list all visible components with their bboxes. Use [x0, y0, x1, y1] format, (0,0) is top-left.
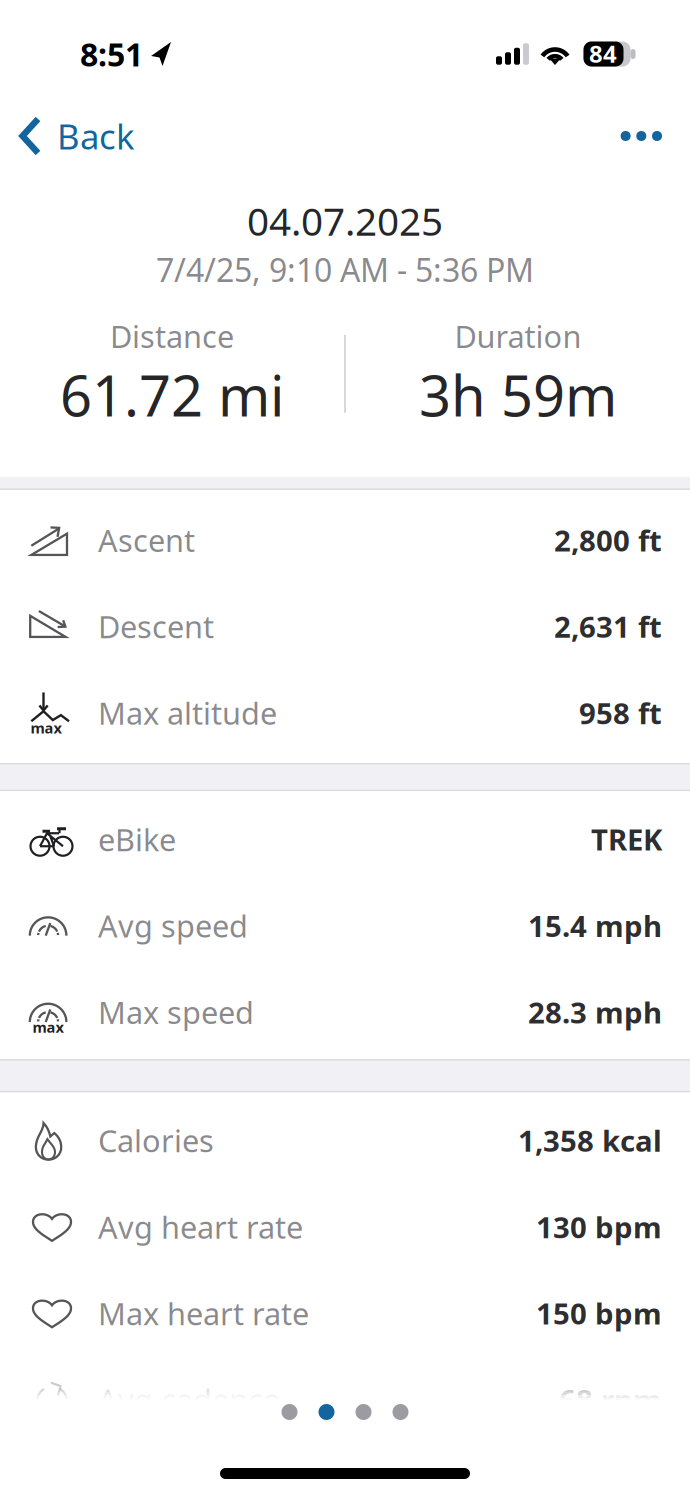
button[interactable]: Calories — [0, 1097, 690, 1184]
staticText: eBike — [98, 819, 176, 860]
staticText: Ascent — [98, 520, 195, 560]
staticText: 1,358 kcal — [518, 1121, 662, 1160]
button[interactable]: Descent — [0, 583, 690, 670]
button[interactable]: Avg speed — [0, 882, 690, 969]
staticText: Max altitude — [98, 692, 277, 733]
button[interactable]: Max heart rate — [0, 1270, 690, 1356]
staticText: 130 bpm — [536, 1207, 662, 1246]
staticText: 2,800 ft — [554, 521, 662, 560]
staticText: 04.07.2025 — [247, 195, 443, 246]
staticText: Avg heart rate — [98, 1206, 303, 1247]
staticText: 958 ft — [579, 693, 662, 732]
staticText: Calories — [98, 1120, 214, 1161]
button[interactable]: Back — [0, 111, 157, 161]
staticText: 68 rpm — [559, 1380, 662, 1419]
button[interactable]: max — [0, 969, 690, 1055]
staticText: Descent — [98, 606, 214, 647]
button[interactable]: Ascent — [0, 497, 690, 583]
staticText: 61.72 mi — [60, 357, 284, 432]
staticText: Max speed — [98, 992, 254, 1032]
staticText: Max heart rate — [98, 1293, 309, 1334]
staticText: Distance — [110, 316, 234, 356]
button[interactable]: More options — [591, 111, 690, 161]
staticText: 28.3 mph — [528, 993, 662, 1032]
staticText: 7/4/25, 9:10 AM - 5:36 PM — [156, 248, 534, 291]
staticText: Back — [57, 113, 135, 159]
staticText: 2,631 ft — [554, 607, 662, 646]
staticText: 150 bpm — [536, 1294, 662, 1333]
button[interactable]: Avg cadence — [0, 1356, 690, 1443]
staticText: 3h 59m — [419, 357, 617, 432]
staticText: TREK — [591, 820, 662, 859]
staticText: max — [30, 718, 61, 738]
staticText: 8:51 — [80, 33, 143, 75]
staticText: 84 — [589, 38, 617, 69]
staticText: Duration — [454, 316, 581, 356]
button[interactable]: max — [0, 670, 690, 756]
staticText: 15.4 mph — [528, 906, 662, 945]
button[interactable]: Avg heart rate — [0, 1184, 690, 1270]
staticText: Avg speed — [98, 905, 248, 946]
button[interactable]: eBike — [0, 796, 690, 882]
staticText: max — [32, 1017, 63, 1037]
